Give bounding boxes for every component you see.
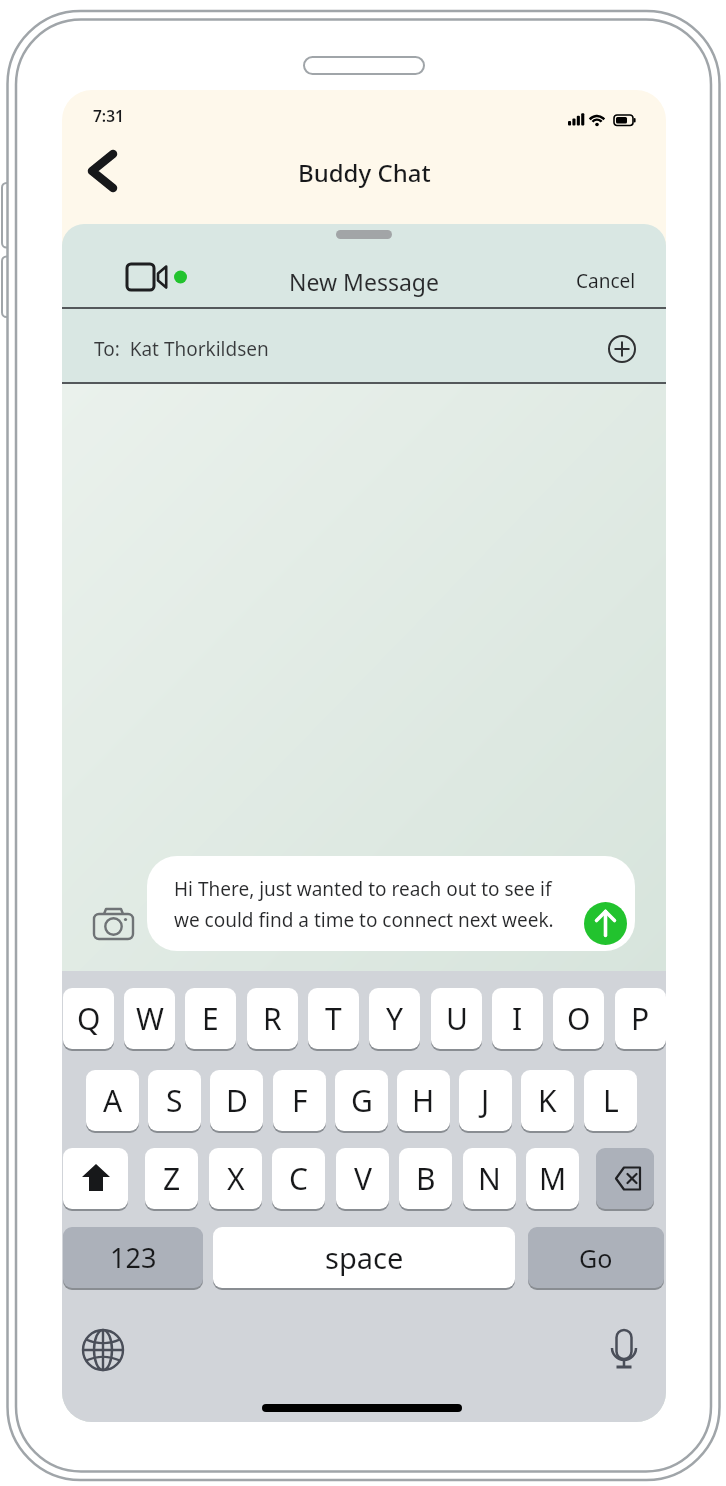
button[interactable]: Z [145, 1148, 198, 1211]
staticText: Buddy Chat [298, 156, 431, 189]
staticText: G [351, 1080, 373, 1121]
staticText: Go [579, 1241, 613, 1275]
staticText: 7:31 [93, 105, 124, 126]
staticText: A [103, 1080, 123, 1121]
staticText: R [263, 998, 282, 1039]
button[interactable] [606, 333, 638, 365]
staticText: 123 [110, 1239, 157, 1276]
button[interactable]: C [272, 1148, 325, 1211]
staticText: New Message [289, 266, 439, 297]
staticText: L [603, 1080, 619, 1121]
staticText: space [325, 1238, 404, 1277]
button[interactable]: 123 [63, 1227, 203, 1290]
button[interactable]: N [463, 1148, 516, 1211]
staticText: X [227, 1158, 245, 1199]
button[interactable]: U [431, 988, 482, 1051]
button[interactable] [80, 1327, 126, 1373]
button[interactable]: E [185, 988, 236, 1051]
staticText: Cancel [576, 268, 636, 294]
button[interactable]: Q [63, 988, 114, 1051]
button[interactable]: D [210, 1070, 263, 1133]
staticText: S [166, 1080, 183, 1121]
staticText: U [446, 998, 468, 1039]
button[interactable]: W [124, 988, 175, 1051]
button[interactable] [584, 902, 627, 945]
button[interactable] [91, 899, 141, 941]
staticText: Hi There, just wanted to reach out to se… [174, 876, 554, 932]
staticText: M [539, 1158, 567, 1199]
staticText: N [478, 1158, 501, 1199]
button[interactable]: F [273, 1070, 326, 1133]
button[interactable]: A [86, 1070, 139, 1133]
button[interactable] [120, 256, 190, 298]
button[interactable]: R [247, 988, 298, 1051]
button[interactable]: Go [528, 1227, 664, 1290]
staticText: O [567, 998, 591, 1039]
staticText: Q [77, 998, 101, 1039]
staticText: H [412, 1080, 435, 1121]
staticText: V [354, 1158, 372, 1199]
button[interactable]: Hi There, just wanted to reach out to se… [147, 856, 635, 951]
button[interactable]: K [521, 1070, 574, 1133]
button[interactable]: O [553, 988, 604, 1051]
button[interactable]: space [213, 1227, 515, 1290]
button[interactable]: P [615, 988, 666, 1051]
button[interactable]: T [308, 988, 359, 1051]
staticText: F [292, 1080, 308, 1121]
button[interactable]: L [584, 1070, 637, 1133]
button[interactable]: H [397, 1070, 450, 1133]
button[interactable] [596, 1148, 654, 1211]
staticText: C [289, 1158, 308, 1199]
button[interactable] [76, 145, 128, 197]
staticText: W [136, 998, 164, 1039]
button[interactable] [63, 1148, 128, 1211]
staticText: B [416, 1158, 436, 1199]
staticText: P [631, 998, 650, 1039]
staticText: J [481, 1080, 490, 1121]
button[interactable]: V [336, 1148, 389, 1211]
staticText: K [538, 1080, 557, 1121]
button[interactable]: J [459, 1070, 512, 1133]
staticText: T [325, 998, 342, 1039]
staticText: Z [163, 1158, 181, 1199]
staticText: To: Kat Thorkildsen [94, 336, 269, 362]
staticText: E [202, 998, 219, 1039]
button[interactable]: X [209, 1148, 262, 1211]
button[interactable]: M [526, 1148, 579, 1211]
button[interactable]: S [148, 1070, 201, 1133]
button[interactable]: B [399, 1148, 452, 1211]
staticText: Y [386, 998, 403, 1039]
staticText: D [226, 1080, 248, 1121]
button[interactable]: Cancel [532, 267, 636, 295]
staticText: I [512, 998, 523, 1039]
button[interactable]: I [492, 988, 543, 1051]
button[interactable]: G [335, 1070, 388, 1133]
button[interactable]: Y [369, 988, 420, 1051]
button[interactable] [610, 1326, 638, 1372]
